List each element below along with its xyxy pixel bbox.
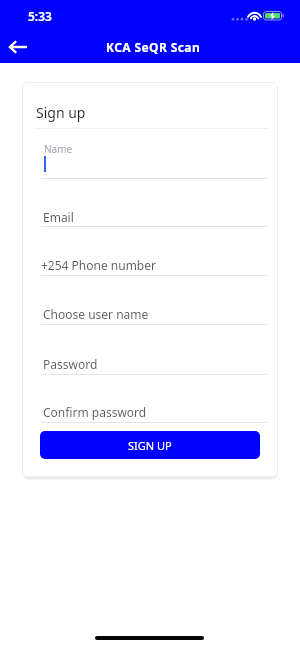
staticText: Password (43, 356, 98, 372)
staticText: Confirm password (43, 404, 147, 420)
staticText: SIGN UP (128, 438, 172, 453)
staticText: 5:33 (28, 8, 52, 24)
button[interactable] (2, 36, 34, 58)
staticText: Name (44, 142, 73, 156)
button[interactable]: SIGN UP (40, 431, 260, 459)
staticText: +254 Phone number (41, 257, 156, 273)
staticText: Email (43, 209, 74, 225)
staticText: KCA SeQR Scan (106, 39, 201, 55)
staticText: Choose user name (43, 306, 149, 322)
staticText: Sign up (36, 103, 86, 122)
